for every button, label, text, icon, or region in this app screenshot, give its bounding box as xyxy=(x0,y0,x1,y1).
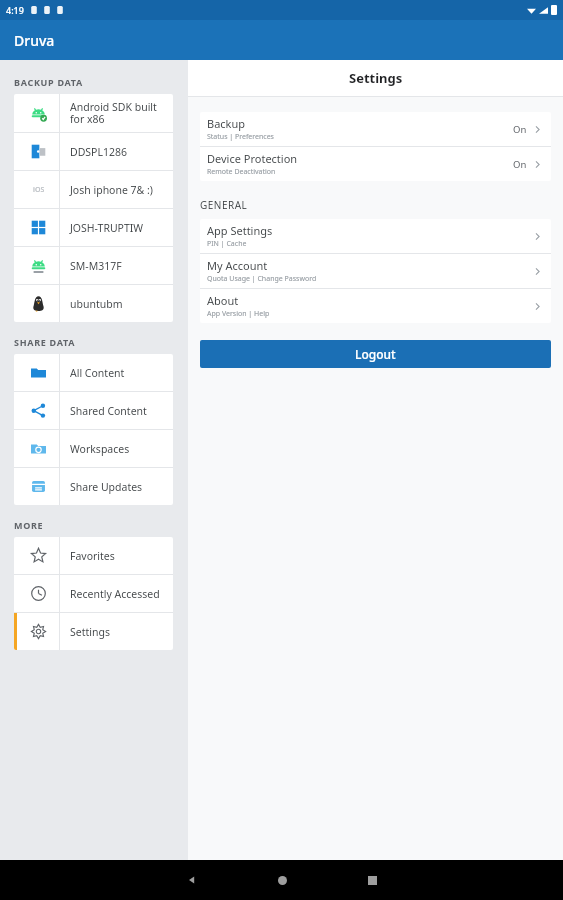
staticText: App Version | Help xyxy=(207,309,270,319)
staticText: Recently Accessed xyxy=(70,587,160,601)
staticText: About xyxy=(207,293,239,308)
staticText: Druva xyxy=(14,31,55,50)
button[interactable]: Backup xyxy=(200,112,551,146)
button[interactable]: SM-M317F xyxy=(14,247,173,284)
button[interactable]: Settings xyxy=(14,613,173,650)
staticText: All Content xyxy=(70,366,125,380)
staticText: MORE xyxy=(14,519,44,531)
staticText: Logout xyxy=(355,346,396,362)
staticText: Device Protection xyxy=(207,151,298,166)
staticText: GENERAL xyxy=(200,198,248,212)
button[interactable]: Android SDK built for x86 xyxy=(14,94,173,132)
button[interactable]: Shared Content xyxy=(14,392,173,429)
staticText: Shared Content xyxy=(70,404,147,418)
staticText: Settings xyxy=(349,69,403,87)
staticText: Settings xyxy=(70,625,110,639)
button[interactable]: My Account xyxy=(200,254,551,288)
button[interactable]: Device Protection xyxy=(200,147,551,181)
button[interactable]: Recents xyxy=(327,860,417,900)
staticText: App Settings xyxy=(207,223,273,238)
staticText: On xyxy=(513,123,527,136)
staticText: On xyxy=(513,158,527,171)
staticText: DDSPL1286 xyxy=(70,145,127,159)
staticText: SM-M317F xyxy=(70,259,122,273)
button[interactable]: Back xyxy=(147,860,237,900)
button[interactable]: Recently Accessed xyxy=(14,575,173,612)
button[interactable]: ubuntubm xyxy=(14,285,173,322)
staticText: My Account xyxy=(207,258,268,273)
staticText: JOSH-TRUPTIW xyxy=(70,221,144,235)
button[interactable]: Favorites xyxy=(14,537,173,574)
button[interactable]: Share Updates xyxy=(14,468,173,505)
staticText: Quota Usage | Change Password xyxy=(207,274,317,284)
staticText: BACKUP DATA xyxy=(14,76,84,88)
staticText: iOS xyxy=(33,185,45,195)
staticText: Favorites xyxy=(70,549,115,563)
button[interactable]: JOSH-TRUPTIW xyxy=(14,209,173,246)
button[interactable]: All Content xyxy=(14,354,173,391)
staticText: ubuntubm xyxy=(70,297,123,311)
button[interactable]: Home xyxy=(237,860,327,900)
staticText: Status | Preferences xyxy=(207,132,274,142)
button[interactable]: Workspaces xyxy=(14,430,173,467)
button[interactable]: About xyxy=(200,289,551,323)
staticText: Backup xyxy=(207,116,246,131)
staticText: Workspaces xyxy=(70,442,130,456)
button[interactable]: iOS xyxy=(14,171,173,208)
staticText: Android SDK built for x86 xyxy=(70,100,169,126)
staticText: 4:19 xyxy=(6,4,24,16)
staticText: Share Updates xyxy=(70,480,143,494)
staticText: PIN | Cache xyxy=(207,239,247,249)
button[interactable]: DDSPL1286 xyxy=(14,133,173,170)
staticText: SHARE DATA xyxy=(14,336,76,348)
staticText: Josh iphone 7& :) xyxy=(70,183,154,197)
button[interactable]: Logout xyxy=(200,340,551,368)
button[interactable]: App Settings xyxy=(200,219,551,253)
staticText: Remote Deactivation xyxy=(207,167,276,177)
